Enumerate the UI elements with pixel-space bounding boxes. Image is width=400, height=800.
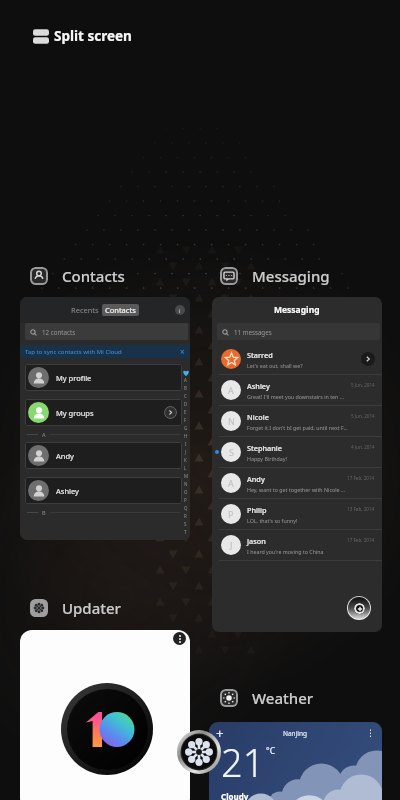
staticText: Q <box>184 505 188 511</box>
staticText: 5 Jun, 2014 <box>351 382 375 388</box>
staticText: 11 messages <box>234 328 272 336</box>
staticText: My groups <box>56 408 94 418</box>
staticText: O <box>184 489 188 495</box>
staticText: LOL, that's so funny! <box>247 517 298 524</box>
staticText: E <box>184 409 187 415</box>
button[interactable]: New message <box>348 597 370 619</box>
button[interactable]: Weather <box>220 688 314 708</box>
staticText: M <box>184 473 188 479</box>
button[interactable]: Andy <box>25 442 182 469</box>
staticText: Cloudy <box>221 791 249 800</box>
button[interactable]: Updater <box>30 598 121 618</box>
staticText: A <box>228 384 234 396</box>
button[interactable]: App shortcut <box>177 730 221 774</box>
staticText: + <box>216 724 224 742</box>
button[interactable]: 12 contacts <box>25 323 188 340</box>
staticText: A <box>42 431 46 438</box>
button[interactable]: P <box>212 499 382 529</box>
staticText: Forget it.I don't bI get paid, until nex… <box>247 424 348 431</box>
staticText: I heard you're moving to China <box>247 548 324 555</box>
staticText: P <box>184 497 187 503</box>
button[interactable]: + <box>209 722 382 800</box>
staticText: K <box>184 457 187 463</box>
button[interactable]: My groups <box>25 399 182 426</box>
staticText: S <box>184 521 187 527</box>
staticText: N <box>228 415 235 427</box>
staticText: Messaging <box>252 266 330 286</box>
staticText: 21 <box>221 736 265 788</box>
button[interactable]: Tap to sync contacts with Mi Cloud <box>20 345 190 358</box>
staticText: Messaging <box>274 304 320 316</box>
button[interactable]: 11 messages <box>217 323 380 340</box>
staticText: Jason <box>247 536 266 546</box>
staticText: P <box>228 508 234 520</box>
button[interactable]: S <box>212 437 382 467</box>
staticText: A <box>184 377 187 383</box>
staticText: D <box>184 401 188 407</box>
button[interactable]: More options <box>20 630 190 800</box>
staticText: Nanjing <box>283 729 307 738</box>
staticText: 12 contacts <box>42 328 76 336</box>
staticText: 5 Jun, 2014 <box>351 413 375 419</box>
staticText: Andy <box>247 474 265 484</box>
staticText: N <box>184 481 188 487</box>
button[interactable]: A <box>212 468 382 498</box>
staticText: Ashley <box>247 381 270 391</box>
button[interactable]: Recents <box>20 297 190 540</box>
staticText: L <box>184 465 187 471</box>
staticText: Contacts <box>62 266 125 286</box>
staticText: B <box>184 385 187 391</box>
staticText: F <box>184 417 187 423</box>
staticText: Starred <box>247 350 273 360</box>
button[interactable]: Menu <box>175 305 185 315</box>
button[interactable]: Messaging <box>212 297 382 632</box>
staticText: R <box>184 513 187 519</box>
staticText: Nicole <box>247 412 269 422</box>
staticText: °C <box>266 745 276 757</box>
staticText: Andy <box>56 451 74 461</box>
staticText: ⋮ <box>366 728 375 738</box>
button[interactable]: Split screen <box>33 27 132 45</box>
button[interactable]: A <box>212 375 382 405</box>
staticText: Hey, want to get together with Nicole ..… <box>247 486 346 493</box>
staticText: 4 Jun, 2014 <box>351 444 375 450</box>
staticText: Ashley <box>56 486 79 496</box>
button[interactable]: Starred <box>212 344 382 374</box>
staticText: × <box>180 346 185 357</box>
staticText: 17 Feb, 2014 <box>347 537 375 543</box>
staticText: Stephanie <box>247 443 283 453</box>
staticText: A <box>228 477 234 489</box>
staticText: 17 Feb, 2014 <box>347 475 375 481</box>
staticText: J <box>185 449 187 455</box>
staticText: Great! I'll meet you downstairs in ten .… <box>247 393 344 400</box>
staticText: S <box>229 446 234 458</box>
staticText: Happy Birthday! <box>247 455 287 462</box>
button[interactable]: N <box>212 406 382 436</box>
staticText: Let's eat out, shall we? <box>247 362 303 369</box>
staticText: Philip <box>247 505 267 515</box>
staticText: Contacts <box>105 305 136 315</box>
staticText: Split screen <box>54 27 132 45</box>
staticText: B <box>42 509 46 516</box>
button[interactable]: More options <box>173 632 186 645</box>
staticText: H <box>184 433 188 439</box>
staticText: I <box>185 441 187 447</box>
staticText: Weather <box>252 688 314 708</box>
button[interactable]: J <box>212 530 382 560</box>
staticText: 13 Feb, 2014 <box>347 506 375 512</box>
staticText: Tap to sync contacts with Mi Cloud <box>25 348 122 356</box>
button[interactable]: Ashley <box>25 477 182 504</box>
staticText: T <box>184 529 187 535</box>
staticText: Updater <box>62 598 121 618</box>
staticText: My profile <box>56 373 92 383</box>
button[interactable]: Messaging <box>220 266 330 286</box>
staticText: G <box>184 425 188 431</box>
staticText: i <box>179 307 181 314</box>
staticText: C <box>184 393 187 399</box>
staticText: J <box>230 539 233 551</box>
button[interactable]: Contacts <box>30 266 125 286</box>
staticText: Recents <box>71 305 99 315</box>
button[interactable]: My profile <box>25 364 182 391</box>
